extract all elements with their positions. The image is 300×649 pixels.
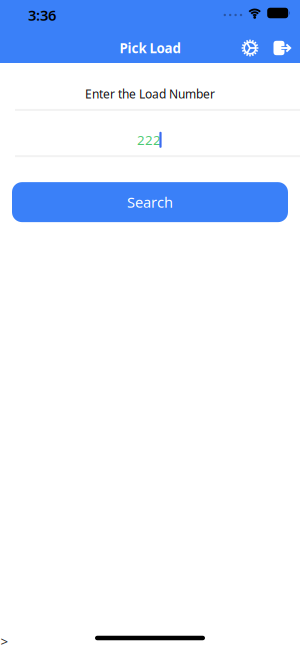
staticText: Search [127,192,173,212]
staticText: Pick Load [119,39,180,57]
button[interactable]: Search [0,182,300,222]
staticText: 3:36 [28,5,56,25]
staticText: Enter the Load Number [85,86,215,102]
staticText: > [0,632,8,649]
staticText: 222 [137,131,161,149]
button[interactable]: Settings [240,38,260,58]
button[interactable]: Log out [273,40,291,56]
